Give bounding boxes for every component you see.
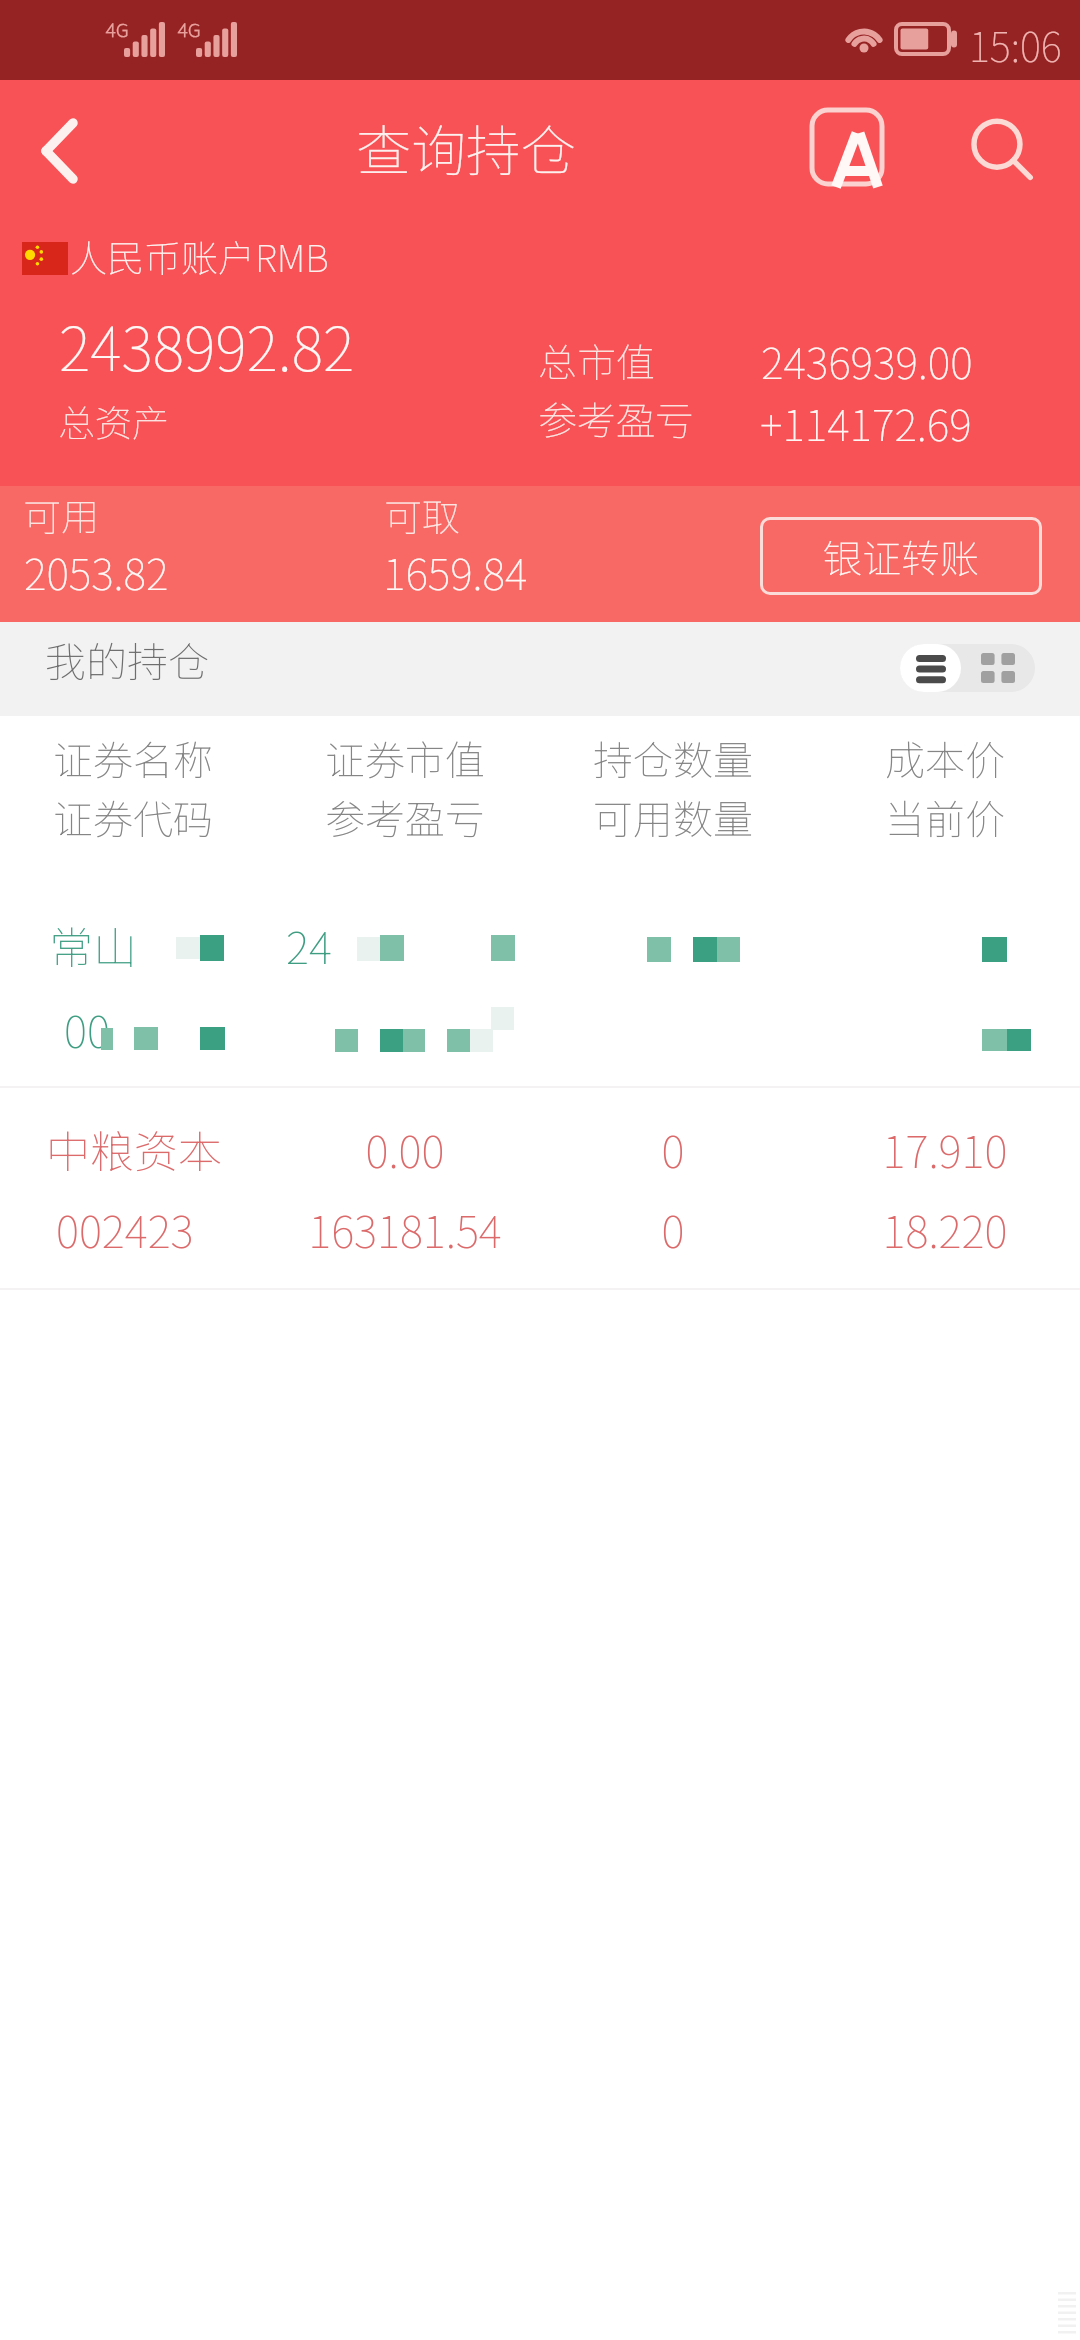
staticText: 中粮资本 [46,1117,222,1181]
staticText: 常山 [49,913,137,977]
staticText: 002423 [56,1197,194,1261]
staticText: 证券代码 [53,788,213,846]
staticText: 2436939.00 [761,329,973,391]
staticText: 可取 [384,487,461,542]
staticText: 15:06 [969,16,1062,74]
staticText: 总资产 [58,394,169,448]
staticText: 0 [493,1197,853,1261]
staticText: 1659.84 [383,540,528,602]
staticText: 证券名称 [53,729,213,787]
staticText: 24 [286,913,332,977]
staticText: 当前价 [765,788,1080,846]
staticText: 人民币账户RMB [70,229,329,283]
button[interactable]: 银证转账 [760,517,1042,595]
button[interactable]: List view [900,644,961,692]
staticText: 4G [106,15,129,43]
staticText: 银证转账 [823,528,980,584]
button[interactable]: Grid view [961,644,1035,692]
staticText: 0.00 [225,1117,585,1181]
staticText: 0 [493,1117,853,1181]
staticText: 17.910 [765,1117,1080,1181]
button[interactable]: Font size [790,80,906,222]
staticText: 4G [178,15,201,43]
staticText: 我的持仓 [45,629,209,688]
button[interactable]: Back [0,80,118,222]
staticText: 总市值 [538,332,656,388]
staticText: +114172.69 [760,391,972,453]
staticText: 参考盈亏 [538,390,695,446]
button[interactable]: Search [940,80,1058,222]
button[interactable]: 中粮资本 [0,1088,1080,1288]
button[interactable]: 常山 [0,884,1080,1088]
staticText: 成本价 [765,729,1080,787]
staticText: 2438992.82 [59,301,355,388]
staticText: 2053.82 [24,540,169,602]
staticText: 可用数量 [493,788,853,846]
staticText: 00 [64,997,110,1061]
staticText: 查询持仓 [356,107,577,187]
staticText: 可用 [23,487,100,542]
staticText: 参考盈亏 [225,788,585,846]
staticText: 持仓数量 [493,729,853,787]
staticText: 163181.54 [225,1197,585,1261]
staticText: 18.220 [765,1197,1080,1261]
staticText: 证券市值 [225,729,585,787]
